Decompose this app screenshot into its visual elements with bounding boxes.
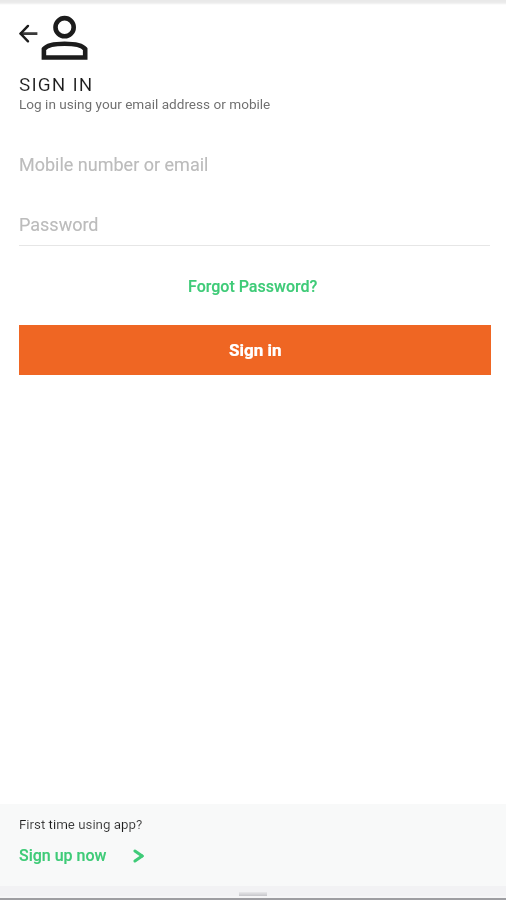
staticText: Sign in <box>229 340 282 360</box>
staticText: SIGN IN <box>19 73 94 95</box>
staticText: Forgot Password? <box>188 277 318 296</box>
staticText: First time using app? <box>19 817 143 833</box>
staticText: Sign up now <box>19 846 107 865</box>
staticText: Mobile number or email <box>19 154 209 175</box>
button[interactable]: Sign in <box>19 325 491 375</box>
button[interactable]: Back <box>14 21 40 47</box>
button[interactable]: Password <box>0 201 506 247</box>
staticText: Password <box>19 214 99 235</box>
button[interactable]: Mobile number or email <box>0 141 506 187</box>
staticText: Log in using your email address or mobil… <box>19 96 271 112</box>
button[interactable]: Sign up now <box>13 842 151 869</box>
button[interactable]: Forgot Password? <box>178 272 328 301</box>
